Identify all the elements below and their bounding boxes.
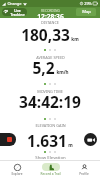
staticText: 29% xyxy=(84,1,92,6)
staticText: Map xyxy=(82,9,91,15)
button[interactable]: Stop recording xyxy=(0,133,16,146)
staticText: 12:28:36 xyxy=(37,12,64,21)
staticText: Record a Trail xyxy=(40,172,61,176)
staticText: km xyxy=(71,36,79,42)
staticText: AVERAGE SPEED xyxy=(36,55,65,60)
staticText: Explore xyxy=(11,172,23,176)
button[interactable]: Live xyxy=(2,8,27,16)
staticText: Orange xyxy=(7,1,22,6)
staticText: Profile xyxy=(79,172,89,176)
staticText: 34:42:19 xyxy=(19,91,81,112)
staticText: 180,33 xyxy=(21,24,70,45)
button[interactable]: Record a Trail xyxy=(34,161,67,178)
staticText: RECORDING xyxy=(41,8,60,12)
staticText: km/h xyxy=(56,69,69,75)
staticText: 5,2 xyxy=(32,57,55,78)
staticText: MOVING TIME xyxy=(37,89,63,94)
staticText: DISTANCE xyxy=(41,20,59,25)
staticText: Show Elevation xyxy=(35,154,66,160)
button[interactable]: Profile xyxy=(67,161,100,178)
button[interactable]: Explore xyxy=(0,161,34,178)
button[interactable]: Record video xyxy=(84,133,97,146)
staticText: ELEVATION GAIN xyxy=(35,123,66,128)
staticText: m xyxy=(68,142,73,148)
staticText: Live xyxy=(14,8,21,12)
button[interactable]: Map xyxy=(76,8,96,16)
staticText: Tracking xyxy=(10,12,25,16)
staticText: 1.631 xyxy=(27,130,67,151)
